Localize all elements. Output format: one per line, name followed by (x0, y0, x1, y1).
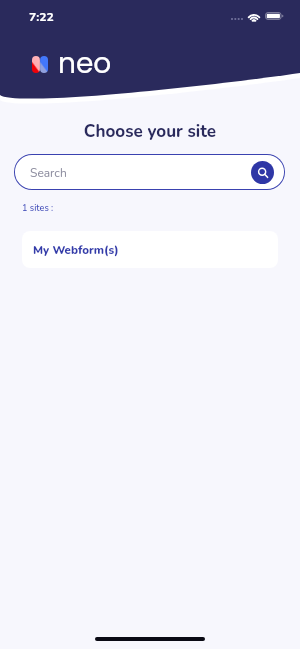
staticText: Choose your site (0, 120, 300, 143)
staticText: 1 sites : (22, 202, 54, 214)
button[interactable]: Search (14, 154, 285, 190)
staticText: My Webform(s) (33, 242, 119, 258)
staticText: Search (30, 165, 67, 181)
button[interactable]: My Webform(s) (22, 231, 278, 268)
staticText: neo (58, 44, 112, 83)
staticText: 7:22 (29, 9, 54, 25)
button[interactable]: Search (251, 161, 274, 184)
